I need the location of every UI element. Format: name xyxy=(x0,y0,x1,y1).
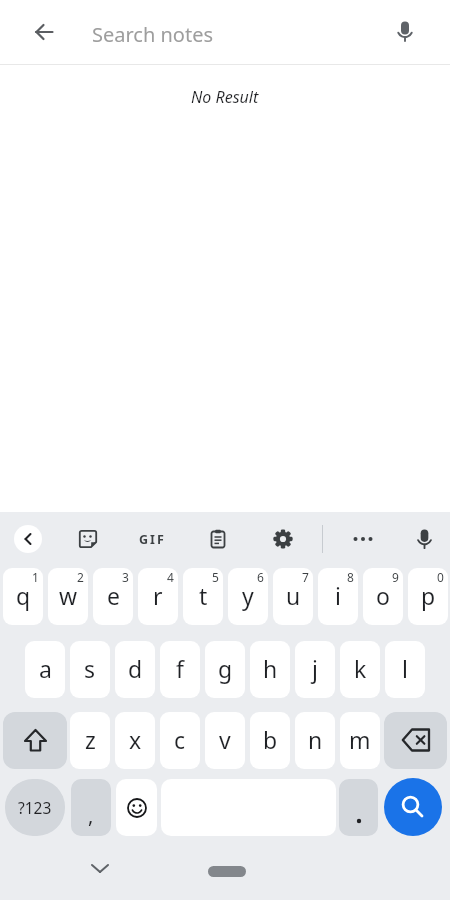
button[interactable]: h xyxy=(250,641,290,698)
button[interactable]: i xyxy=(318,568,358,625)
button[interactable]: b xyxy=(250,712,290,769)
button[interactable] xyxy=(384,778,442,836)
button[interactable] xyxy=(351,527,375,551)
button[interactable]: u xyxy=(273,568,313,625)
staticText: k xyxy=(354,653,367,684)
button[interactable]: n xyxy=(295,712,335,769)
staticText: j xyxy=(312,653,318,684)
button[interactable]: GIF xyxy=(134,527,170,551)
button[interactable]: p xyxy=(408,568,448,625)
staticText: m xyxy=(349,724,371,755)
staticText: 5 xyxy=(212,569,219,585)
button[interactable] xyxy=(88,856,112,880)
button[interactable]: z xyxy=(70,712,110,769)
staticText: y xyxy=(242,580,254,611)
button[interactable] xyxy=(412,527,436,551)
button[interactable]: g xyxy=(205,641,245,698)
button[interactable] xyxy=(32,20,56,44)
button[interactable]: w xyxy=(48,568,88,625)
staticText: l xyxy=(402,653,408,684)
staticText: x xyxy=(129,724,142,755)
staticText: 4 xyxy=(167,569,174,585)
staticText: s xyxy=(84,653,96,684)
staticText: u xyxy=(286,580,301,611)
staticText: n xyxy=(308,724,323,755)
staticText: g xyxy=(218,653,233,684)
staticText: Search notes xyxy=(92,21,214,48)
button[interactable] xyxy=(14,525,42,553)
button[interactable]: t xyxy=(183,568,223,625)
staticText: q xyxy=(16,580,31,611)
button[interactable]: ?123 xyxy=(5,779,65,836)
staticText: e xyxy=(107,580,120,611)
staticText: b xyxy=(263,724,278,755)
staticText: w xyxy=(59,580,78,611)
staticText: f xyxy=(176,653,184,684)
staticText: r xyxy=(153,580,163,611)
staticText: No Result xyxy=(191,86,259,108)
button[interactable]: r xyxy=(138,568,178,625)
button[interactable]: m xyxy=(340,712,380,769)
staticText: 0 xyxy=(437,569,444,585)
staticText: , xyxy=(88,802,94,829)
staticText: d xyxy=(128,653,143,684)
button[interactable]: e xyxy=(93,568,133,625)
button[interactable]: a xyxy=(25,641,65,698)
button[interactable] xyxy=(3,712,67,769)
staticText: 8 xyxy=(347,569,354,585)
button[interactable] xyxy=(206,527,230,551)
button[interactable]: v xyxy=(205,712,245,769)
staticText: z xyxy=(85,724,96,755)
button[interactable]: f xyxy=(160,641,200,698)
button[interactable] xyxy=(271,527,295,551)
button[interactable]: d xyxy=(115,641,155,698)
button[interactable]: k xyxy=(340,641,380,698)
staticText: 1 xyxy=(32,569,39,585)
staticText: ?123 xyxy=(18,797,52,818)
staticText: 2 xyxy=(77,569,84,585)
button[interactable]: l xyxy=(385,641,425,698)
staticText: t xyxy=(199,580,208,611)
button[interactable] xyxy=(384,712,447,769)
button[interactable] xyxy=(116,779,157,836)
staticText: i xyxy=(335,580,341,611)
button[interactable] xyxy=(76,527,100,551)
staticText: v xyxy=(219,724,231,755)
staticText: 9 xyxy=(392,569,399,585)
staticText: p xyxy=(421,580,436,611)
staticText: 7 xyxy=(302,569,309,585)
button[interactable]: x xyxy=(115,712,155,769)
button[interactable]: s xyxy=(70,641,110,698)
staticText: a xyxy=(39,653,52,684)
staticText: o xyxy=(376,580,390,611)
button[interactable] xyxy=(393,20,417,44)
staticText: 3 xyxy=(122,569,129,585)
button[interactable]: c xyxy=(160,712,200,769)
staticText: c xyxy=(174,724,186,755)
button[interactable]: , xyxy=(71,779,111,836)
button[interactable] xyxy=(339,779,378,836)
button[interactable]: j xyxy=(295,641,335,698)
button[interactable]: o xyxy=(363,568,403,625)
staticText: h xyxy=(263,653,278,684)
button[interactable]: q xyxy=(3,568,43,625)
button[interactable]: y xyxy=(228,568,268,625)
staticText: 6 xyxy=(257,569,264,585)
staticText: GIF xyxy=(139,531,166,548)
